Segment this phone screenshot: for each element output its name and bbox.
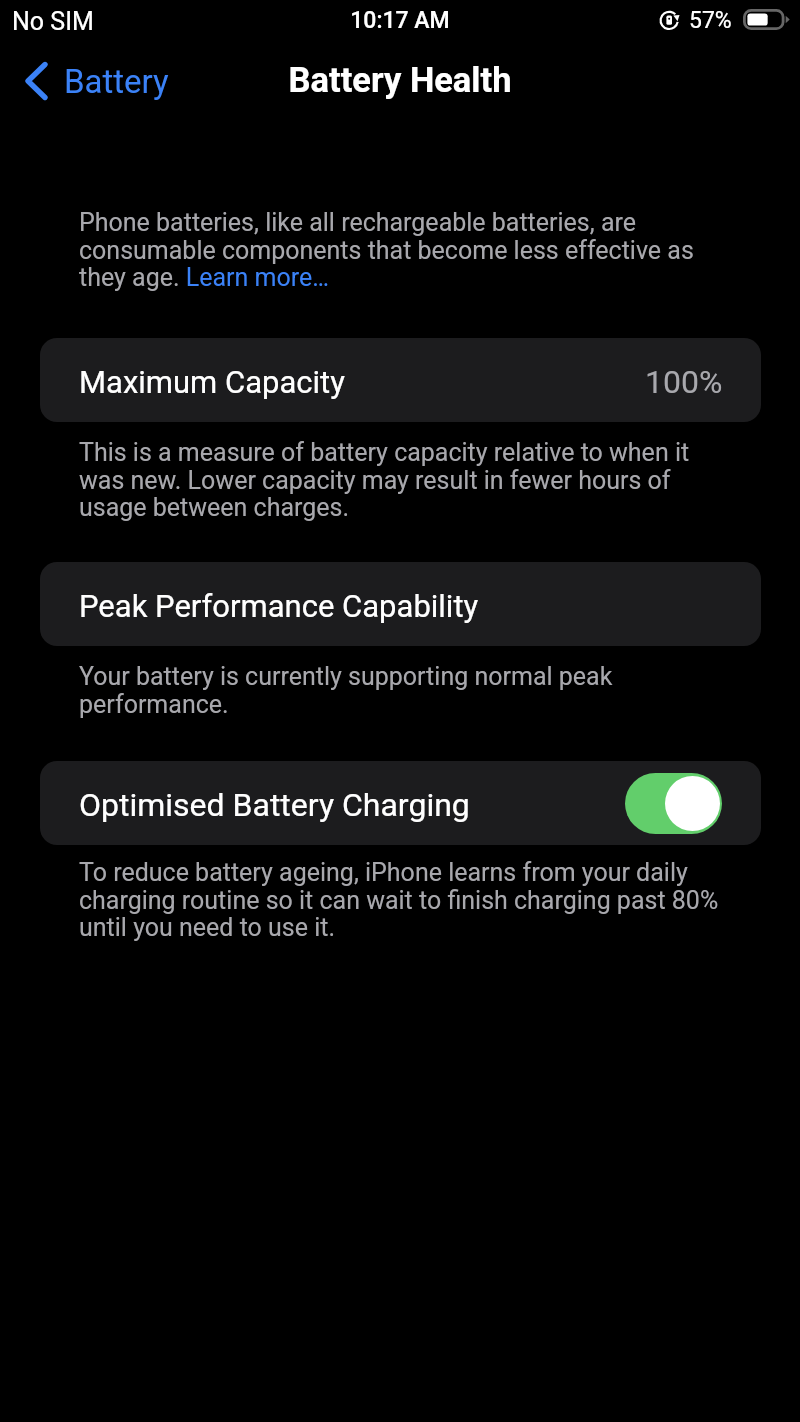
button[interactable]: Back	[25, 58, 169, 104]
other: Rotation lock	[660, 10, 680, 30]
staticText: This is a measure of battery capacity re…	[79, 438, 724, 522]
button[interactable]: Learn more	[184, 265, 329, 295]
button[interactable]: Maximum Capacity	[40, 338, 761, 422]
staticText: 10:17 AM	[0, 7, 800, 34]
staticText: Optimised Battery Charging	[79, 786, 470, 824]
staticText: To reduce battery ageing, iPhone learns …	[79, 858, 724, 942]
button[interactable]: Optimised Battery Charging	[40, 761, 761, 845]
staticText: Peak Performance Capability	[79, 588, 479, 624]
other: Back	[25, 58, 48, 104]
staticText: Battery Health	[0, 60, 800, 100]
button[interactable]: Peak Performance Capability	[40, 562, 761, 646]
staticText: 100%	[645, 363, 723, 401]
staticText: Maximum Capacity	[79, 364, 345, 400]
staticText: No SIM	[12, 7, 94, 36]
staticText: Battery	[64, 62, 169, 101]
staticText: Your battery is currently supporting nor…	[79, 662, 724, 719]
staticText: 57%	[689, 7, 732, 34]
button[interactable]: Optimised Battery Charging toggle	[625, 773, 722, 834]
staticText: Phone batteries, like all rechargeable b…	[79, 208, 724, 292]
